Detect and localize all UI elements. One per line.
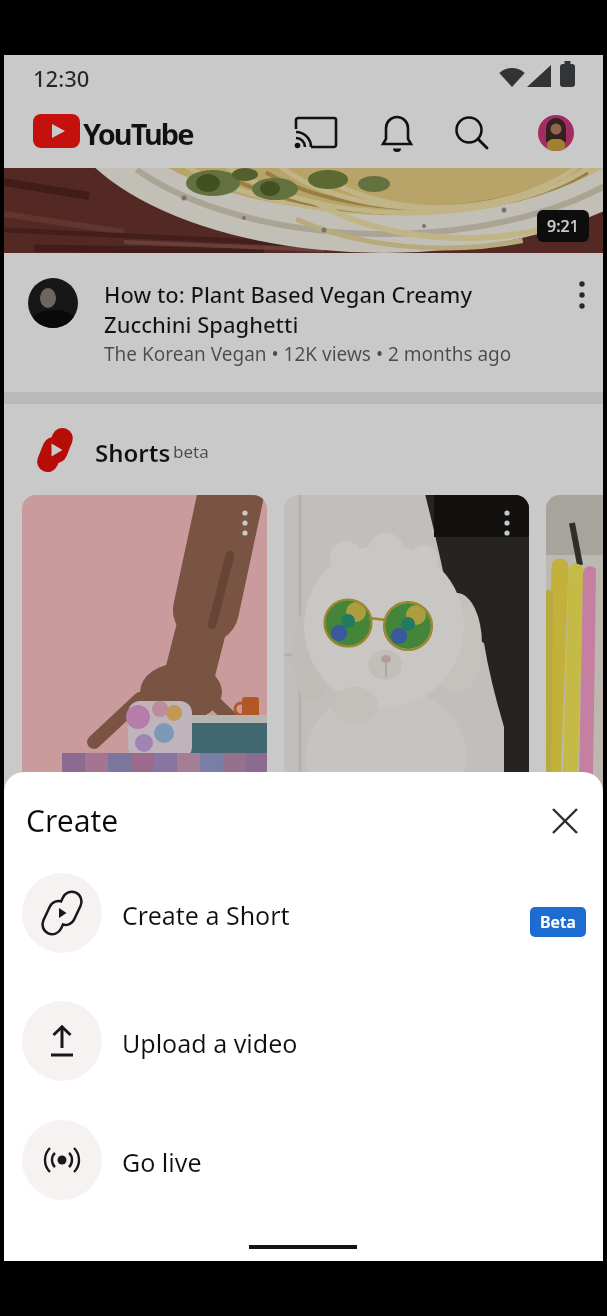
staticText: The Korean Vegan • 12K views • 2 months …	[104, 341, 512, 367]
button[interactable]	[546, 495, 607, 915]
button[interactable]: Go live	[4, 1100, 603, 1220]
staticText: Create a Short	[122, 898, 290, 932]
button[interactable]	[284, 495, 529, 915]
staticText: Beta	[540, 911, 576, 933]
staticText: Upload a video	[122, 1026, 298, 1060]
button[interactable]	[235, 503, 255, 547]
button[interactable]	[452, 113, 492, 153]
staticText: Zucchini Spaghetti	[104, 309, 299, 339]
staticText: Go live	[122, 1145, 202, 1179]
button[interactable]	[570, 278, 594, 312]
staticText: 9:21	[547, 215, 579, 237]
staticText: beta	[173, 440, 209, 463]
staticText: Create	[26, 800, 119, 841]
button[interactable]	[22, 495, 267, 915]
button[interactable]: Create a Short	[4, 853, 603, 973]
button[interactable]: Upload a video	[4, 981, 603, 1101]
button[interactable]	[33, 114, 80, 148]
staticText: YouTube	[83, 114, 193, 153]
staticText: Shorts	[95, 436, 171, 469]
button[interactable]	[380, 112, 414, 154]
staticText: 12:30	[33, 63, 90, 93]
button[interactable]	[550, 806, 580, 836]
staticText: How to: Plant Based Vegan Creamy	[104, 279, 472, 309]
button[interactable]	[28, 278, 78, 328]
button[interactable]	[294, 115, 338, 151]
button[interactable]	[538, 115, 574, 151]
button[interactable]	[497, 503, 517, 547]
